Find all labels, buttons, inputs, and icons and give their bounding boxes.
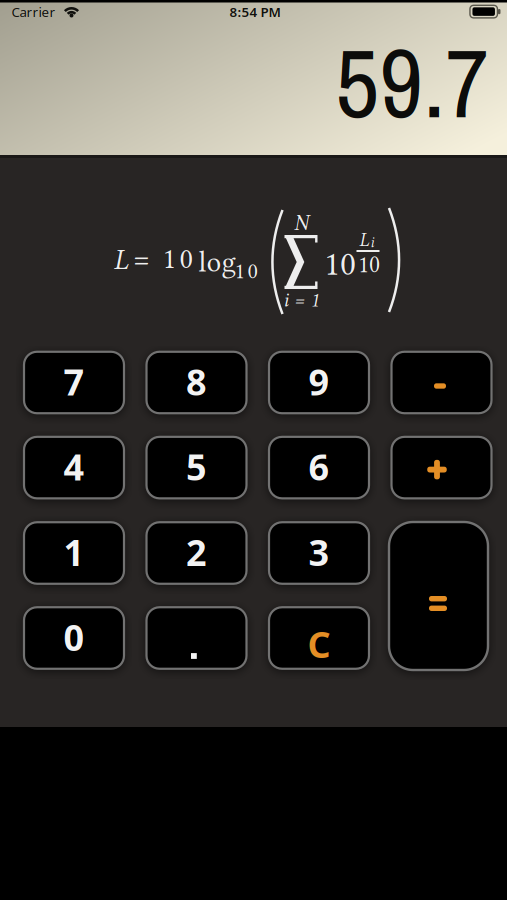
staticText: i (370, 234, 374, 251)
button[interactable]: 6 (269, 437, 369, 498)
button[interactable]: 4 (24, 437, 124, 498)
staticText: 59.7 (335, 18, 489, 147)
button[interactable]: 9 (269, 352, 369, 413)
staticText: N (294, 211, 308, 235)
staticText: 0 (63, 613, 84, 661)
button[interactable] (389, 522, 488, 670)
button[interactable]: 3 (269, 522, 369, 584)
staticText: 10 (324, 244, 356, 283)
staticText: C (307, 620, 330, 668)
staticText: 3 (308, 528, 329, 576)
staticText: L (113, 243, 128, 276)
staticText: 8:54 PM (229, 3, 280, 21)
button[interactable]: 7 (24, 352, 124, 413)
staticText: 10 (358, 251, 380, 278)
staticText: 10 (162, 242, 193, 275)
staticText: 2 (186, 528, 207, 576)
staticText: 5 (186, 443, 207, 490)
button[interactable]: 2 (146, 522, 246, 584)
staticText: 4 (63, 443, 84, 490)
staticText: 8 (186, 358, 207, 405)
staticText: i = 1 (283, 289, 319, 311)
staticText: Carrier (11, 3, 55, 21)
button[interactable] (146, 607, 246, 669)
staticText: 7 (63, 358, 84, 405)
button[interactable]: 1 (24, 522, 124, 584)
staticText: 9 (308, 358, 329, 405)
button[interactable] (391, 437, 491, 498)
staticText: L (359, 228, 369, 251)
staticText: 1 (63, 528, 84, 576)
button[interactable]: 8 (146, 352, 246, 413)
staticText: 10 (234, 258, 258, 284)
staticText: log (198, 245, 236, 279)
button[interactable]: 5 (146, 437, 246, 498)
button[interactable]: 0 (24, 607, 124, 669)
button[interactable] (391, 352, 491, 413)
button[interactable]: C (269, 607, 369, 669)
staticText: 6 (308, 443, 329, 490)
staticText: = (133, 242, 150, 277)
